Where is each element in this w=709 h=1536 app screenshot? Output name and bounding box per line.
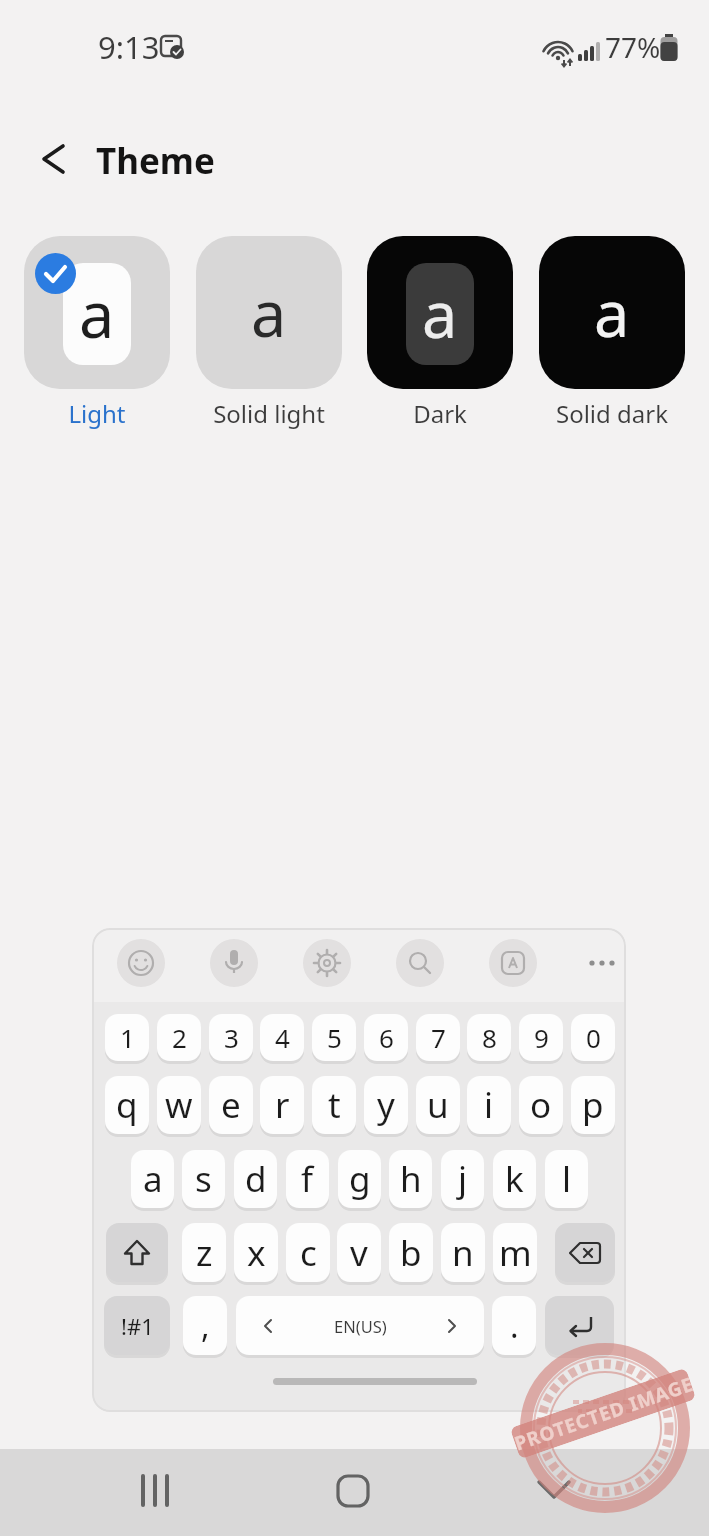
button[interactable]: a: [367, 236, 513, 389]
button[interactable]: [106, 1223, 168, 1282]
staticText: 8: [482, 1020, 497, 1055]
button[interactable]: [33, 136, 77, 180]
staticText: t: [328, 1081, 341, 1129]
button[interactable]: 9: [519, 1014, 563, 1061]
staticText: Light: [24, 397, 170, 430]
staticText: u: [427, 1081, 449, 1129]
button[interactable]: 0: [571, 1014, 615, 1061]
staticText: Solid light: [196, 397, 342, 430]
staticText: p: [582, 1081, 604, 1129]
staticText: Solid dark: [539, 397, 685, 430]
staticText: 3: [224, 1020, 239, 1055]
button[interactable]: a: [131, 1150, 174, 1208]
button[interactable]: [578, 939, 626, 987]
staticText: y: [377, 1081, 395, 1129]
staticText: PROTECTED IMAGE: [511, 1371, 695, 1456]
button[interactable]: m: [493, 1223, 537, 1282]
button[interactable]: a: [196, 236, 342, 389]
staticText: b: [400, 1229, 422, 1277]
staticText: 9: [534, 1020, 549, 1055]
staticText: 0: [586, 1020, 601, 1055]
button[interactable]: a: [539, 236, 685, 389]
button[interactable]: 3: [209, 1014, 253, 1061]
staticText: i: [484, 1081, 494, 1129]
staticText: a: [251, 270, 287, 356]
staticText: k: [505, 1155, 524, 1203]
staticText: o: [530, 1081, 552, 1129]
button[interactable]: EN(US): [236, 1296, 484, 1355]
button[interactable]: s: [182, 1150, 225, 1208]
button[interactable]: g: [338, 1150, 381, 1208]
button[interactable]: 8: [467, 1014, 511, 1061]
button[interactable]: f: [286, 1150, 329, 1208]
staticText: 1: [120, 1020, 135, 1055]
staticText: a: [143, 1155, 163, 1203]
button[interactable]: h: [389, 1150, 432, 1208]
staticText: r: [275, 1081, 290, 1129]
button[interactable]: [545, 1296, 614, 1355]
staticText: n: [452, 1229, 474, 1277]
button[interactable]: !#1: [104, 1296, 170, 1355]
staticText: 77%: [605, 28, 661, 66]
staticText: .: [510, 1304, 519, 1348]
staticText: 5: [327, 1020, 342, 1055]
button[interactable]: 7: [416, 1014, 460, 1061]
staticText: 7: [431, 1020, 446, 1055]
button[interactable]: d: [234, 1150, 277, 1208]
button[interactable]: t: [312, 1076, 356, 1134]
button[interactable]: c: [286, 1223, 330, 1282]
staticText: !#1: [121, 1311, 154, 1341]
staticText: 4: [275, 1020, 290, 1055]
button[interactable]: b: [389, 1223, 433, 1282]
button[interactable]: p: [571, 1076, 615, 1134]
button[interactable]: [117, 939, 165, 987]
button[interactable]: j: [441, 1150, 484, 1208]
button[interactable]: l: [545, 1150, 588, 1208]
staticText: m: [499, 1229, 532, 1277]
button[interactable]: [555, 1223, 615, 1282]
staticText: g: [349, 1155, 371, 1203]
staticText: a: [594, 270, 630, 356]
button[interactable]: x: [234, 1223, 278, 1282]
button[interactable]: [532, 1468, 576, 1512]
staticText: 6: [379, 1020, 394, 1055]
button[interactable]: y: [364, 1076, 408, 1134]
staticText: x: [247, 1229, 266, 1277]
button[interactable]: w: [157, 1076, 201, 1134]
staticText: Theme: [96, 137, 215, 185]
button[interactable]: i: [467, 1076, 511, 1134]
staticText: 2: [172, 1020, 187, 1055]
button[interactable]: n: [441, 1223, 485, 1282]
staticText: s: [195, 1155, 212, 1203]
button[interactable]: a: [24, 236, 170, 389]
button[interactable]: [396, 939, 444, 987]
button[interactable]: z: [182, 1223, 226, 1282]
button[interactable]: 5: [312, 1014, 356, 1061]
staticText: e: [221, 1081, 241, 1129]
button[interactable]: [303, 939, 351, 987]
button[interactable]: 2: [157, 1014, 201, 1061]
button[interactable]: o: [519, 1076, 563, 1134]
button[interactable]: [210, 939, 258, 987]
staticText: d: [245, 1155, 267, 1203]
button[interactable]: 4: [260, 1014, 304, 1061]
button[interactable]: k: [493, 1150, 536, 1208]
staticText: a: [79, 271, 115, 357]
staticText: z: [196, 1229, 213, 1277]
button[interactable]: [489, 939, 537, 987]
button[interactable]: .: [492, 1296, 536, 1355]
button[interactable]: q: [105, 1076, 149, 1134]
button[interactable]: r: [260, 1076, 304, 1134]
button[interactable]: 6: [364, 1014, 408, 1061]
button[interactable]: u: [416, 1076, 460, 1134]
button[interactable]: [331, 1468, 375, 1512]
button[interactable]: ,: [183, 1296, 227, 1355]
button[interactable]: e: [209, 1076, 253, 1134]
button[interactable]: [134, 1468, 178, 1512]
button[interactable]: 1: [105, 1014, 149, 1061]
staticText: ,: [201, 1304, 210, 1348]
staticText: c: [300, 1229, 317, 1277]
staticText: w: [165, 1081, 193, 1129]
button[interactable]: v: [337, 1223, 381, 1282]
staticText: j: [458, 1155, 468, 1203]
